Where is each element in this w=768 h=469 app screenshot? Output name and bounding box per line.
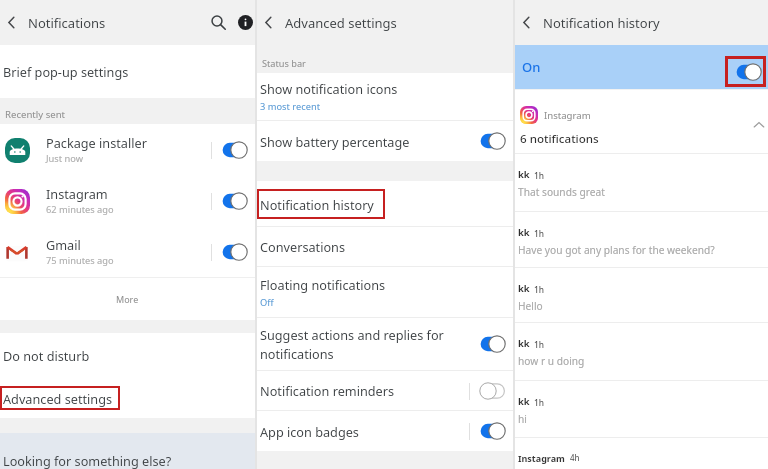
- button[interactable]: Back: [257, 0, 279, 45]
- button[interactable]: Information: [235, 0, 255, 45]
- staticText: Just now: [46, 152, 84, 165]
- button[interactable]: kk: [515, 381, 768, 438]
- staticText: Notifications: [28, 14, 106, 32]
- staticText: Instagram: [544, 109, 591, 122]
- staticText: Gmail: [46, 236, 81, 253]
- staticText: Conversations: [260, 238, 346, 255]
- button[interactable]: On: [515, 45, 768, 89]
- staticText: Instagram: [518, 452, 565, 464]
- button[interactable]: Switch on: [479, 422, 506, 440]
- button[interactable]: Notification history: [257, 181, 513, 226]
- staticText: Floating notifications: [260, 276, 386, 293]
- button[interactable]: Switch on: [479, 132, 506, 150]
- button[interactable]: Switch on: [221, 192, 248, 210]
- button[interactable]: Brief pop-up settings: [0, 45, 255, 98]
- staticText: how r u doing: [518, 354, 585, 368]
- button[interactable]: kk: [515, 212, 768, 268]
- button[interactable]: Instagram: [515, 90, 768, 153]
- button[interactable]: kk: [515, 323, 768, 381]
- staticText: 1h: [534, 339, 545, 350]
- button[interactable]: Floating notifications: [257, 267, 513, 317]
- button[interactable]: Switch on: [479, 335, 506, 353]
- button[interactable]: kk: [515, 154, 768, 212]
- staticText: 4h: [570, 452, 580, 463]
- staticText: Recently sent: [5, 108, 66, 121]
- button[interactable]: Collapse group: [751, 117, 767, 133]
- staticText: Notification history: [543, 14, 660, 32]
- button[interactable]: Show battery percentage: [257, 121, 513, 161]
- staticText: More: [116, 293, 139, 305]
- button[interactable]: Package installer: [0, 124, 255, 175]
- button[interactable]: App icon badges: [257, 411, 513, 451]
- staticText: Advanced settings: [285, 14, 397, 32]
- staticText: 75 minutes ago: [46, 254, 114, 267]
- button[interactable]: Suggest actions and replies for: [257, 318, 513, 370]
- button[interactable]: Advanced settings: [0, 378, 255, 418]
- staticText: 6 notifications: [520, 131, 599, 147]
- staticText: 3 most recent: [260, 100, 320, 113]
- staticText: 1h: [534, 228, 545, 239]
- staticText: Off: [260, 296, 274, 309]
- staticText: Notification reminders: [260, 382, 469, 399]
- button[interactable]: Switch off: [479, 382, 506, 400]
- button[interactable]: Switch on: [221, 243, 248, 261]
- button[interactable]: Switch on: [735, 63, 762, 81]
- button[interactable]: kk: [515, 268, 768, 323]
- staticText: 1h: [534, 284, 545, 295]
- button[interactable]: Back: [515, 0, 537, 45]
- staticText: Show battery percentage: [260, 133, 479, 150]
- staticText: Advanced settings: [3, 390, 113, 407]
- button[interactable]: Notification reminders: [257, 371, 513, 410]
- staticText: kk: [518, 168, 530, 181]
- staticText: kk: [518, 395, 530, 408]
- staticText: Show notification icons: [260, 80, 398, 97]
- staticText: 62 minutes ago: [46, 203, 114, 216]
- staticText: That sounds great: [518, 185, 605, 199]
- button[interactable]: Do not disturb: [0, 333, 255, 378]
- staticText: notifications: [260, 345, 334, 362]
- staticText: Do not disturb: [3, 347, 90, 364]
- staticText: Looking for something else?: [3, 452, 172, 469]
- staticText: Instagram: [46, 185, 108, 202]
- button[interactable]: Conversations: [257, 227, 513, 266]
- button[interactable]: Switch on: [221, 141, 248, 159]
- staticText: Package installer: [46, 134, 147, 151]
- staticText: App icon badges: [260, 423, 469, 440]
- button[interactable]: Show notification icons: [257, 73, 513, 120]
- staticText: kk: [518, 282, 530, 295]
- staticText: Suggest actions and replies for: [260, 326, 444, 343]
- staticText: 1h: [534, 397, 545, 408]
- button[interactable]: Instagram: [0, 175, 255, 226]
- staticText: Brief pop-up settings: [3, 63, 129, 80]
- staticText: Hello: [518, 299, 543, 313]
- button[interactable]: Search: [205, 0, 231, 45]
- button[interactable]: Back: [0, 0, 22, 45]
- button[interactable]: Gmail: [0, 226, 255, 277]
- staticText: kk: [518, 226, 530, 239]
- staticText: hi: [518, 412, 527, 426]
- staticText: On: [522, 58, 725, 76]
- staticText: Status bar: [262, 57, 306, 70]
- staticText: Notification history: [260, 196, 374, 213]
- staticText: 1h: [534, 170, 545, 181]
- staticText: Have you got any plans for the weekend?: [518, 243, 715, 257]
- button[interactable]: More: [0, 278, 255, 320]
- staticText: kk: [518, 337, 530, 350]
